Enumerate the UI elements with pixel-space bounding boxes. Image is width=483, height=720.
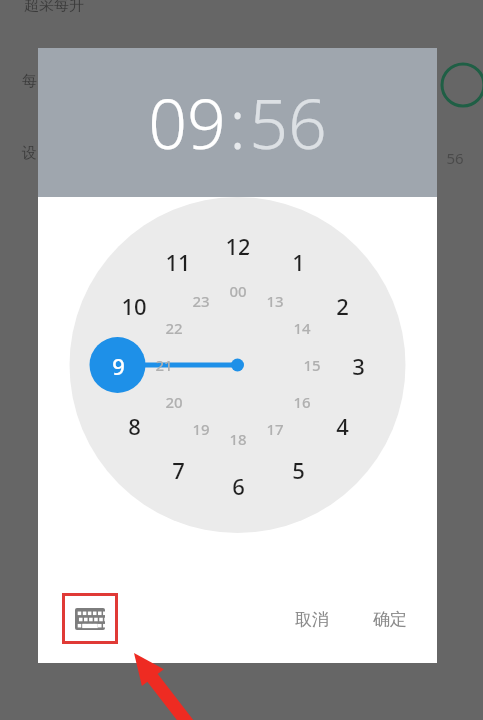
button[interactable]: 22 [160,314,188,342]
staticText: 设 [22,144,37,163]
button[interactable]: 16 [288,388,316,416]
staticText: 56 [446,148,464,168]
staticText: 3 [352,351,365,379]
staticText: 9 [112,351,125,379]
button[interactable]: 10 [120,291,148,319]
button[interactable]: 确定 [359,601,421,638]
staticText: 17 [266,419,284,439]
staticText: 取消 [295,609,329,630]
staticText: 14 [293,318,311,338]
button[interactable]: 11 [164,247,192,275]
staticText: 23 [192,291,210,311]
staticText: 16 [293,392,311,412]
button[interactable]: 取消 [281,601,343,638]
button[interactable]: 2 [328,291,356,319]
staticText: 超采每升 [24,0,84,15]
button[interactable]: 00 [224,277,252,305]
button[interactable]: 14 [288,314,316,342]
staticText: 18 [229,429,247,449]
staticText: 11 [165,247,191,275]
button[interactable]: 12 [224,231,252,259]
staticText: 15 [303,355,321,375]
staticText: 09 [148,76,226,169]
staticText: 22 [165,318,183,338]
staticText: 19 [192,419,210,439]
button[interactable]: 20 [160,388,188,416]
button[interactable]: 56 [249,76,327,169]
button[interactable]: 18 [224,425,252,453]
button[interactable]: 1 [284,247,312,275]
button[interactable]: 15 [298,351,326,379]
staticText: : [229,76,246,169]
button[interactable]: 7 [164,455,192,483]
button[interactable]: 23 [187,287,215,315]
staticText: 2 [336,291,349,319]
button[interactable]: 3 [344,351,372,379]
staticText: 6 [232,471,245,499]
staticText: 1 [292,247,305,275]
staticText: 20 [165,392,183,412]
staticText: 8 [128,411,141,439]
staticText: 确定 [373,609,407,630]
staticText: 12 [225,231,251,259]
button[interactable]: Switch to keyboard input [62,593,118,644]
staticText: 00 [229,281,247,301]
staticText: 10 [121,291,147,319]
staticText: 13 [266,291,284,311]
button[interactable]: 21 [150,351,178,379]
staticText: 每 [22,72,37,91]
staticText: 56 [249,76,327,169]
button[interactable]: 17 [261,415,289,443]
button[interactable]: 5 [284,455,312,483]
button[interactable]: 19 [187,415,215,443]
button[interactable]: 4 [328,411,356,439]
button[interactable]: 6 [224,471,252,499]
staticText: 7 [172,455,185,483]
staticText: 4 [336,411,349,439]
button[interactable]: 13 [261,287,289,315]
button[interactable]: 09 [148,76,226,169]
staticText: 5 [292,455,305,483]
button[interactable]: 8 [120,411,148,439]
button[interactable]: 9 [104,351,132,379]
staticText: 21 [155,355,173,375]
